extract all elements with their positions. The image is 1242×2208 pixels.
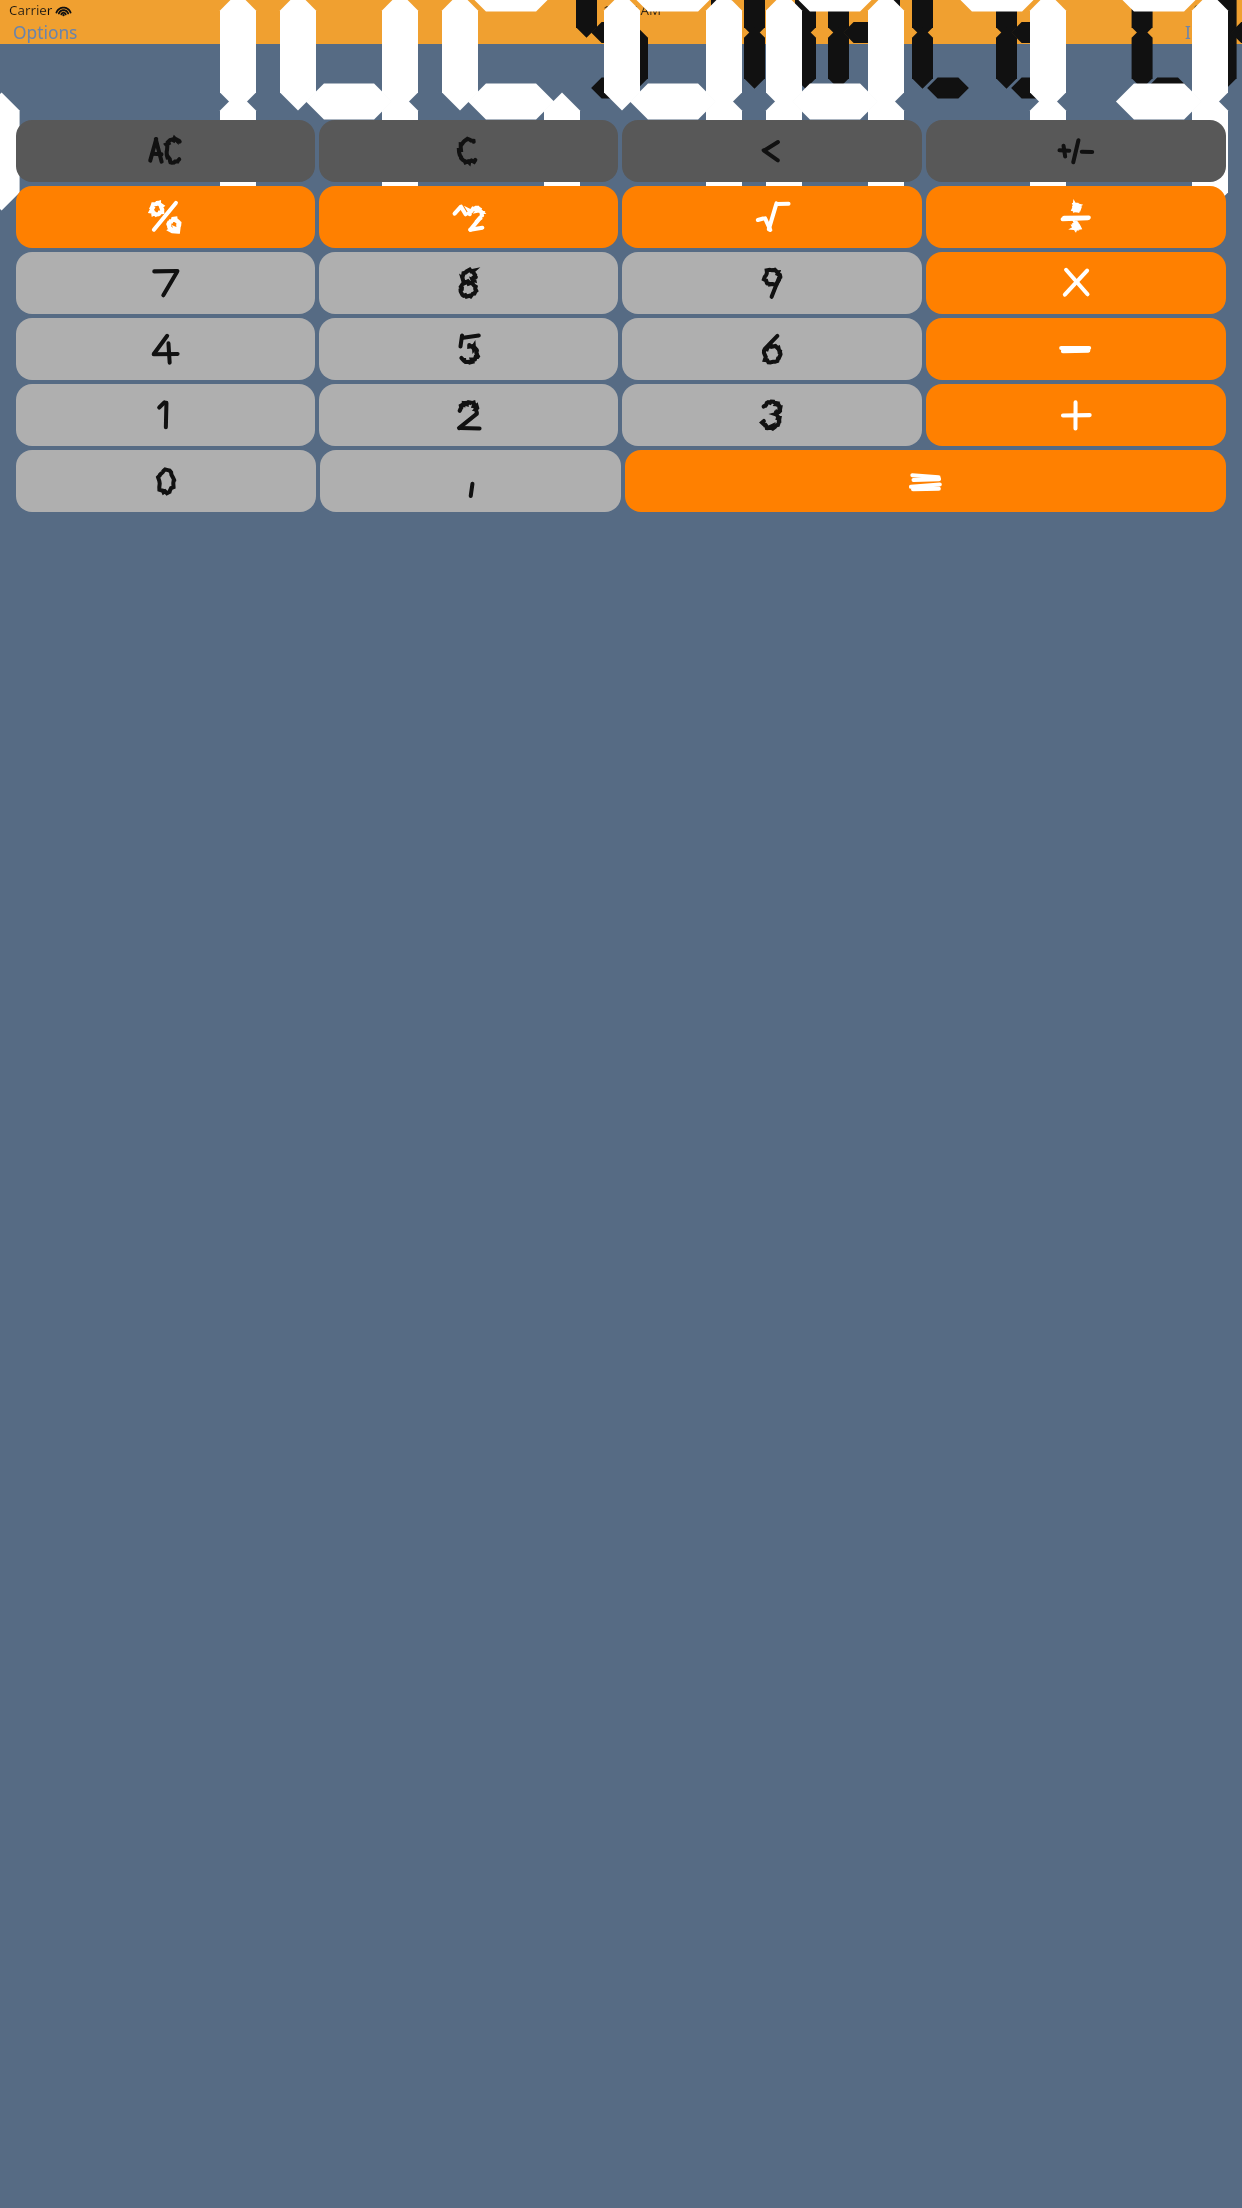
button[interactable]: 3 (622, 384, 922, 446)
button[interactable]: Minus (926, 318, 1226, 380)
button[interactable]: 4 (16, 318, 315, 380)
button[interactable]: Square (319, 186, 618, 248)
button[interactable]: Divide (926, 186, 1226, 248)
button[interactable]: Percent (16, 186, 315, 248)
button[interactable]: Toggle sign (926, 120, 1226, 182)
button[interactable]: 8 (319, 252, 618, 314)
button[interactable]: Zero (16, 450, 316, 512)
button[interactable]: Backspace (622, 120, 922, 182)
button[interactable]: Plus (926, 384, 1226, 446)
button[interactable]: Clear (319, 120, 618, 182)
button[interactable]: 5 (319, 318, 618, 380)
staticText: Options (13, 20, 78, 44)
staticText: Infos (1185, 20, 1227, 44)
button[interactable]: 1 (16, 384, 315, 446)
button[interactable]: All clear (16, 120, 315, 182)
button[interactable]: Multiply (926, 252, 1226, 314)
button[interactable]: Equals (625, 450, 1226, 512)
button[interactable]: Options (13, 20, 78, 44)
button[interactable]: Square root (622, 186, 922, 248)
button[interactable]: Decimal comma (320, 450, 621, 512)
button[interactable]: Infos (1185, 20, 1227, 44)
button[interactable]: 6 (622, 318, 922, 380)
staticText: Carrier (9, 1, 53, 19)
button[interactable]: 2 (319, 384, 618, 446)
button[interactable]: 9 (622, 252, 922, 314)
staticText: 10:37 AM (603, 1, 662, 19)
button[interactable]: 7 (16, 252, 315, 314)
